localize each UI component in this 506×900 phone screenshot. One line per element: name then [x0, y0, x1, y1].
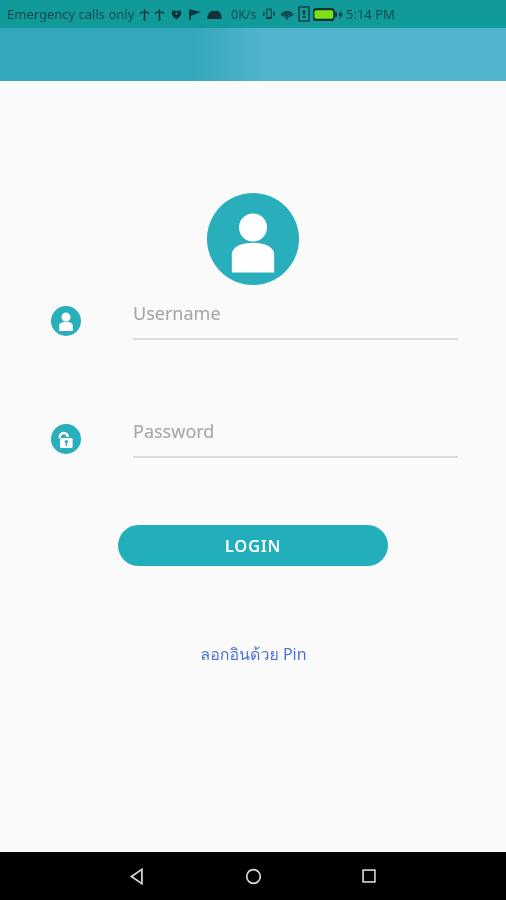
staticText: ลอกอินด้วย Pin: [200, 642, 307, 667]
button[interactable]: Recents: [311, 852, 427, 900]
staticText: 5:14 PM: [346, 5, 395, 23]
button[interactable]: Home: [195, 852, 311, 900]
button[interactable]: Password: [51, 419, 458, 458]
button[interactable]: Back: [79, 852, 195, 900]
staticText: Password: [133, 419, 215, 444]
other: Password: [51, 424, 81, 454]
staticText: Emergency calls only: [7, 5, 135, 23]
staticText: Username: [133, 301, 221, 326]
staticText: 0K/s: [231, 6, 257, 23]
staticText: LOGIN: [225, 535, 282, 557]
button[interactable]: Username: [51, 301, 458, 340]
button[interactable]: LOGIN: [118, 525, 388, 566]
button[interactable]: ลอกอินด้วย Pin: [190, 638, 317, 671]
other: Username: [51, 306, 81, 336]
